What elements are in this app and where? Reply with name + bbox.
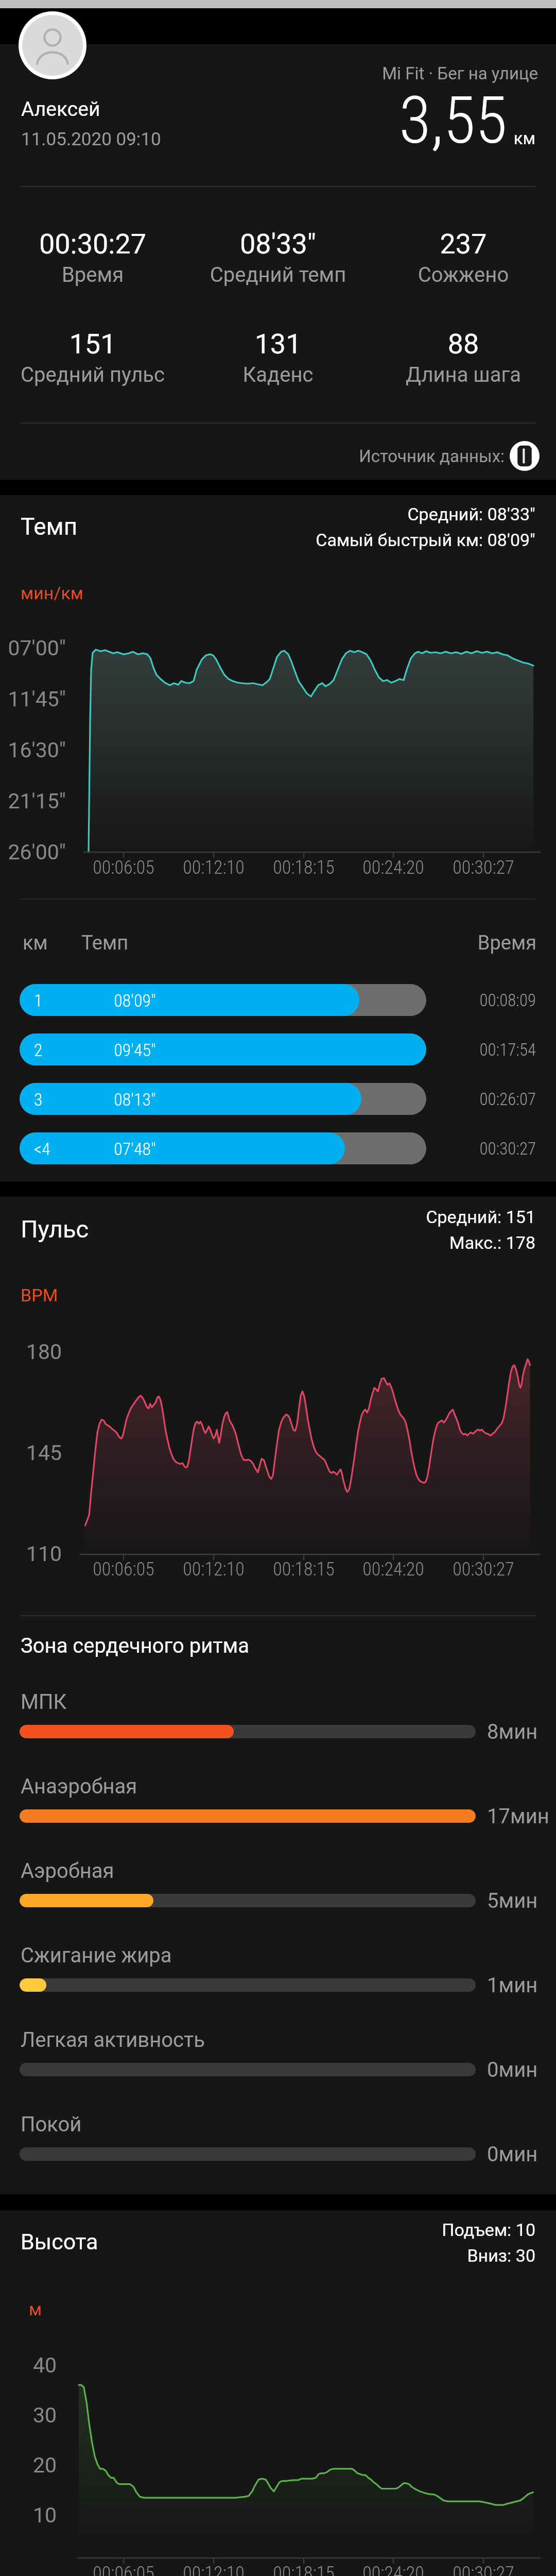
- staticText: 00:30:27: [380, 2563, 556, 2576]
- staticText: 00:30:27: [0, 1139, 536, 1159]
- staticText: 131: [175, 328, 381, 360]
- button[interactable]: Источник данных: [510, 441, 540, 471]
- staticText: Каденс: [175, 363, 381, 387]
- staticText: 00:12:10: [111, 1558, 317, 1580]
- staticText: 11.05.2020 09:10: [21, 129, 161, 150]
- staticText: Источник данных:: [0, 446, 505, 466]
- staticText: 3,55: [0, 82, 507, 159]
- staticText: Mi Fit · Бег на улице: [0, 63, 538, 83]
- staticText: 00:24:20: [290, 1558, 496, 1580]
- staticText: 00:08:09: [0, 990, 536, 1010]
- staticText: 1: [34, 990, 43, 1011]
- staticText: 2: [34, 1040, 43, 1060]
- button[interactable]: [20, 2147, 476, 2161]
- staticText: 00:12:10: [111, 2563, 317, 2576]
- button[interactable]: [20, 984, 426, 1016]
- staticText: <4: [34, 1139, 50, 1159]
- staticText: 07'00": [0, 636, 66, 660]
- staticText: 00:18:15: [201, 857, 407, 878]
- staticText: Средний темп: [175, 263, 381, 287]
- button[interactable]: [20, 1894, 476, 1907]
- staticText: Макс.: 178: [0, 1232, 535, 1253]
- staticText: км: [0, 128, 535, 148]
- staticText: Темп: [21, 513, 78, 540]
- staticText: Длина шага: [360, 363, 556, 387]
- staticText: 00:17:54: [0, 1040, 536, 1060]
- staticText: 0мин: [487, 2058, 538, 2082]
- staticText: Темп: [81, 931, 129, 955]
- staticText: Покой: [21, 2112, 82, 2137]
- button[interactable]: [20, 1132, 426, 1164]
- staticText: Легкая активность: [21, 2028, 205, 2052]
- staticText: 16'30": [0, 738, 66, 762]
- staticText: 5мин: [487, 1889, 538, 1913]
- staticText: 17мин: [487, 1804, 549, 1828]
- button[interactable]: [371, 320, 556, 377]
- staticText: Алексей: [21, 97, 100, 121]
- staticText: BPM: [21, 1285, 58, 1306]
- staticText: 10: [0, 2503, 57, 2528]
- button[interactable]: [185, 220, 371, 277]
- staticText: 145: [0, 1440, 62, 1465]
- staticText: Сжигание жира: [21, 1943, 172, 1968]
- staticText: 00:26:07: [0, 1089, 536, 1109]
- staticText: 110: [0, 1541, 62, 1566]
- staticText: Время: [0, 263, 196, 287]
- staticText: 07'48": [32, 1139, 238, 1159]
- staticText: 09'45": [32, 1040, 238, 1060]
- staticText: 08'09": [32, 990, 238, 1011]
- staticText: 88: [360, 328, 556, 360]
- staticText: Аэробная: [21, 1859, 114, 1883]
- staticText: 11'45": [0, 687, 66, 711]
- staticText: 151: [0, 328, 196, 360]
- staticText: Время: [0, 931, 536, 955]
- staticText: 00:30:27: [380, 1558, 556, 1580]
- staticText: Средний пульс: [0, 363, 196, 387]
- staticText: 237: [360, 228, 556, 260]
- staticText: 00:12:10: [111, 857, 317, 878]
- staticText: 180: [0, 1340, 62, 1364]
- staticText: Средний: 08'33": [0, 504, 535, 524]
- staticText: 00:24:20: [290, 857, 496, 878]
- staticText: 40: [0, 2353, 57, 2378]
- staticText: 00:06:05: [21, 1558, 227, 1580]
- staticText: Вниз: 30: [0, 2245, 535, 2266]
- staticText: 0мин: [487, 2142, 538, 2166]
- button[interactable]: [185, 320, 371, 377]
- button[interactable]: [20, 1083, 426, 1115]
- staticText: 26'00": [0, 840, 66, 865]
- staticText: 8мин: [487, 1720, 538, 1744]
- button[interactable]: [20, 1809, 476, 1823]
- staticText: Средний: 151: [0, 1207, 535, 1227]
- button[interactable]: [0, 320, 185, 377]
- staticText: Сожжено: [360, 263, 556, 287]
- button[interactable]: [20, 1978, 476, 1992]
- button[interactable]: [20, 1033, 426, 1065]
- staticText: Пульс: [21, 1215, 89, 1243]
- staticText: 30: [0, 2403, 57, 2428]
- staticText: 21'15": [0, 789, 66, 814]
- staticText: мин/км: [21, 583, 84, 603]
- staticText: 00:06:05: [21, 2563, 227, 2576]
- staticText: 00:24:20: [290, 2563, 496, 2576]
- button[interactable]: [371, 220, 556, 277]
- staticText: Подъем: 10: [0, 2219, 535, 2240]
- staticText: Зона сердечного ритма: [21, 1634, 249, 1658]
- staticText: Анаэробная: [21, 1774, 137, 1799]
- staticText: км: [23, 931, 48, 955]
- button[interactable]: [0, 220, 185, 277]
- staticText: 00:18:15: [201, 2563, 407, 2576]
- button[interactable]: [20, 1725, 476, 1738]
- staticText: м: [29, 2299, 42, 2319]
- staticText: Высота: [21, 2229, 98, 2255]
- staticText: 1мин: [487, 1973, 538, 1997]
- staticText: Самый быстрый км: 08'09": [0, 530, 535, 550]
- staticText: 00:30:27: [380, 857, 556, 878]
- staticText: 3: [34, 1089, 43, 1110]
- staticText: 00:18:15: [201, 1558, 407, 1580]
- button[interactable]: Профиль: [19, 11, 86, 79]
- staticText: 00:06:05: [21, 857, 227, 878]
- staticText: 08'13": [32, 1089, 238, 1110]
- staticText: 00:30:27: [0, 228, 196, 260]
